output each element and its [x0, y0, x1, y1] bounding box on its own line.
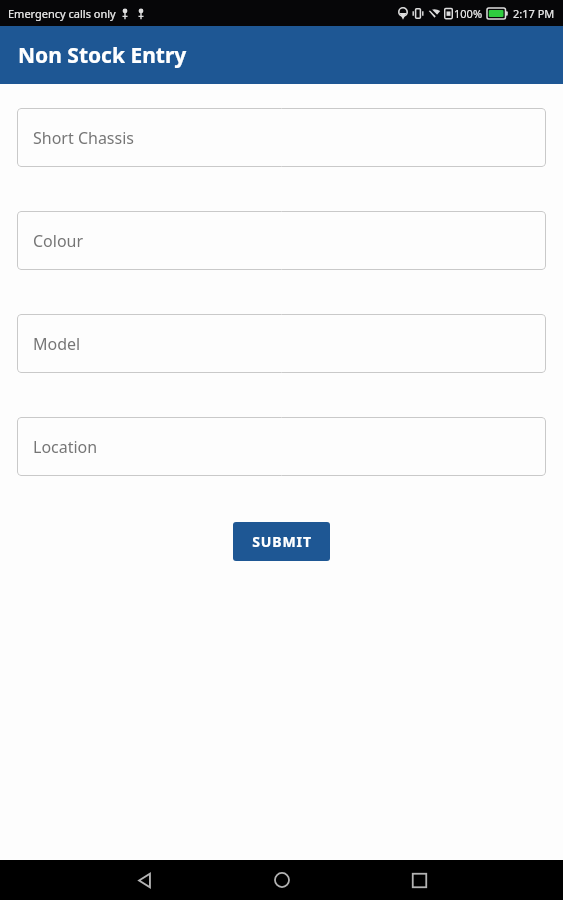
- staticText: SUBMIT: [252, 532, 312, 551]
- staticText: Short Chassis: [33, 127, 134, 149]
- button[interactable]: Colour: [17, 211, 546, 270]
- staticText: Emergency calls only: [8, 6, 116, 21]
- button[interactable]: SUBMIT: [233, 522, 330, 561]
- staticText: 100%: [454, 6, 483, 21]
- staticText: Model: [33, 333, 81, 355]
- button[interactable]: Back: [120, 860, 168, 900]
- staticText: 2:17 PM: [513, 6, 555, 21]
- button[interactable]: Location: [17, 417, 546, 476]
- button[interactable]: Model: [17, 314, 546, 373]
- staticText: Colour: [33, 230, 84, 252]
- staticText: Location: [33, 436, 98, 458]
- button[interactable]: Recent apps: [395, 860, 443, 900]
- button[interactable]: Short Chassis: [17, 108, 546, 167]
- button[interactable]: Home: [258, 860, 306, 900]
- staticText: Non Stock Entry: [18, 41, 187, 70]
